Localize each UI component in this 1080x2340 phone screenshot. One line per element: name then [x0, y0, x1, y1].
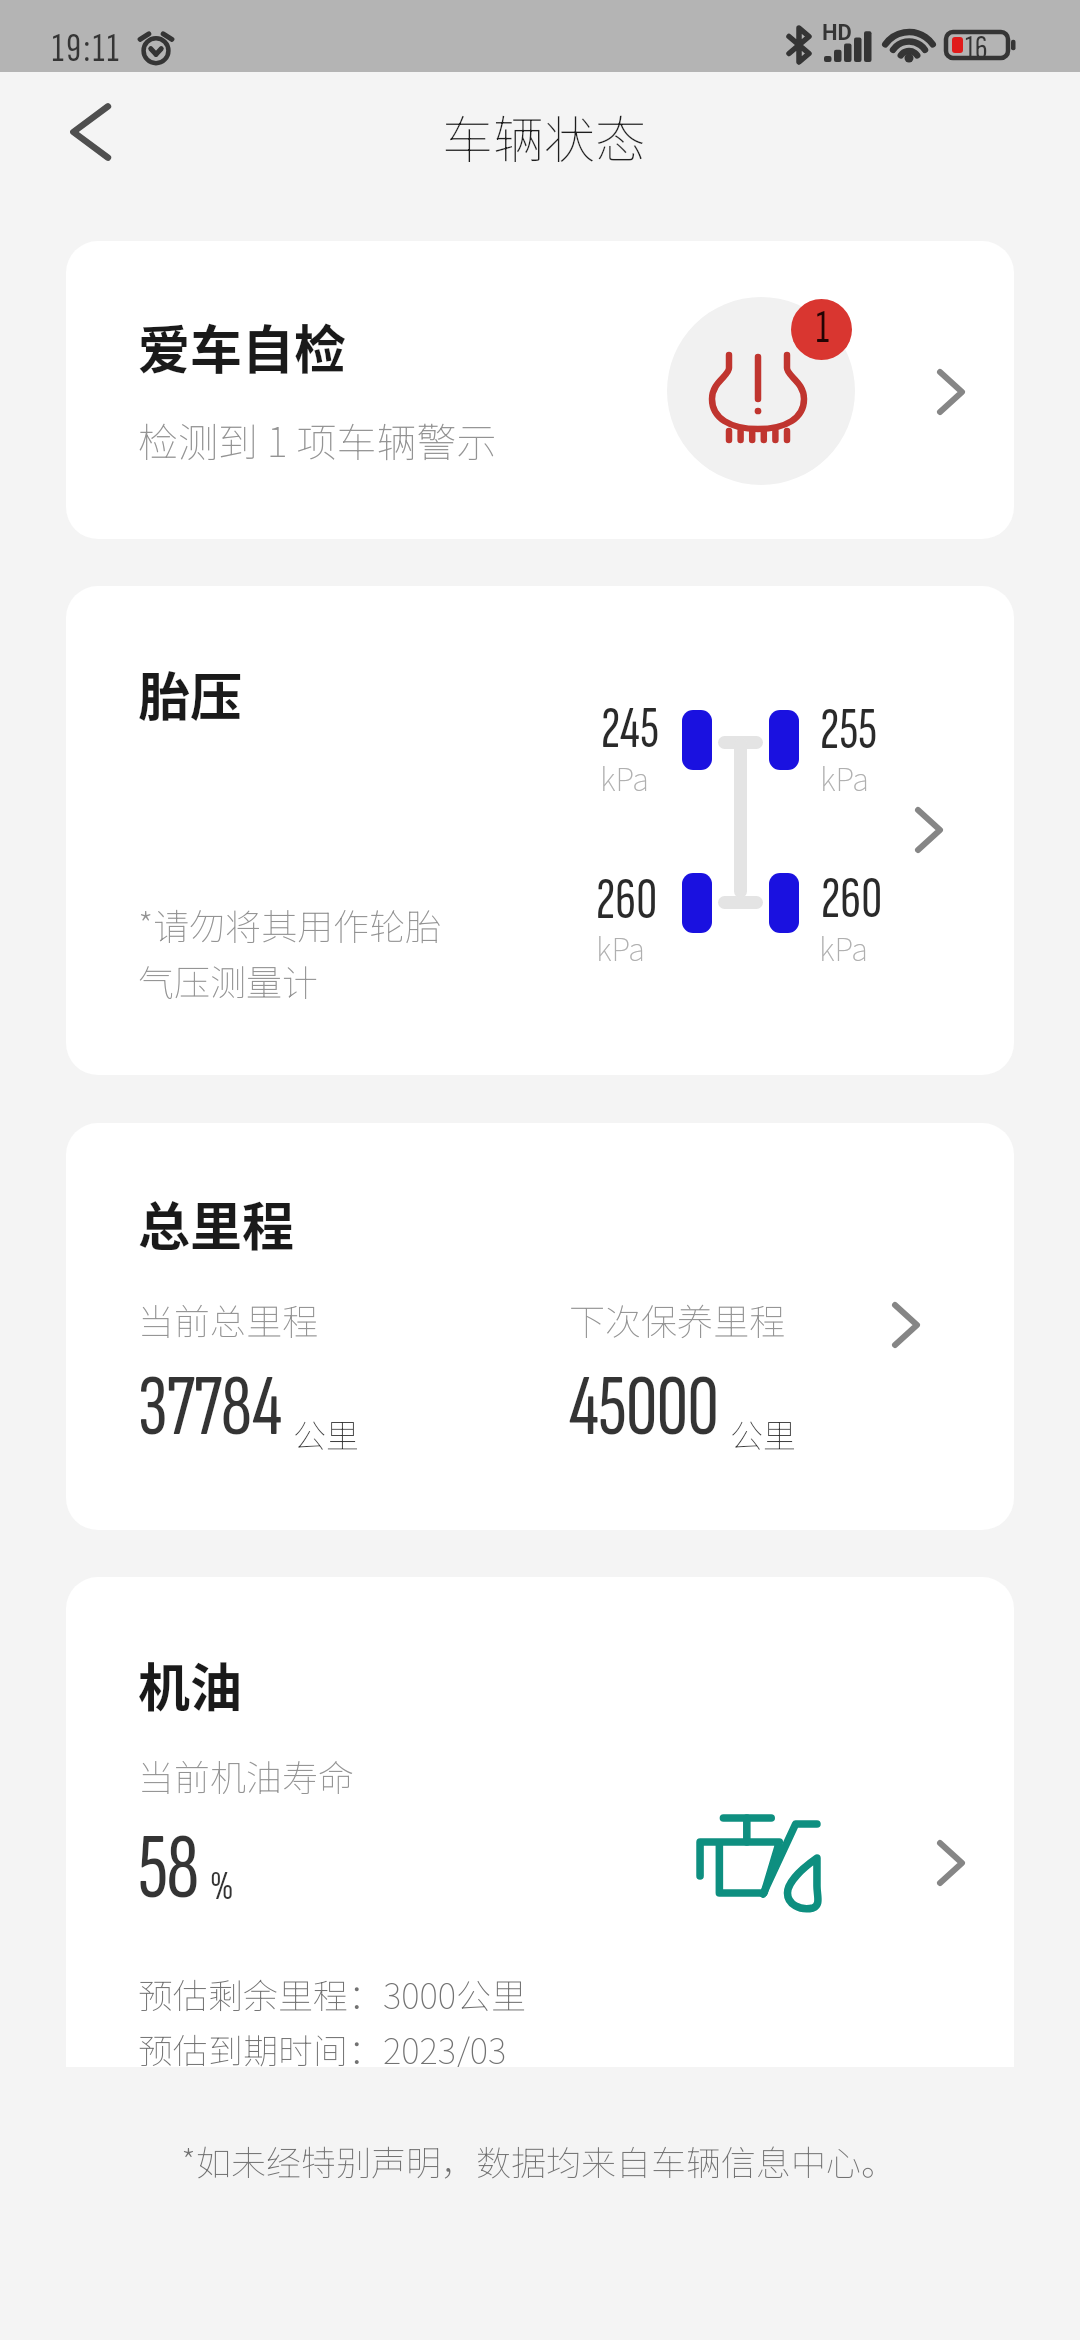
staticText: 公里: [293, 1410, 359, 1458]
staticText: %: [210, 1863, 234, 1911]
staticText: 1: [816, 301, 830, 356]
staticText: 245: [601, 695, 660, 765]
staticText: 当前机油寿命: [138, 1749, 355, 1801]
staticText: 19:11: [52, 24, 122, 73]
button[interactable]: 总里程: [66, 1123, 1014, 1530]
staticText: kPa: [819, 925, 868, 970]
staticText: 45000: [569, 1355, 719, 1461]
staticText: kPa: [596, 925, 645, 970]
staticText: 爱车自检: [138, 309, 347, 384]
staticText: 公里: [730, 1410, 796, 1458]
button[interactable]: 爱车自检: [66, 241, 1014, 539]
button[interactable]: 胎压: [66, 586, 1014, 1075]
staticText: *如未经特别声明，数据均来自车辆信息中心。: [181, 2135, 896, 2186]
button[interactable]: Back: [58, 100, 122, 164]
staticText: 预估剩余里程：3000公里: [138, 1968, 526, 2019]
staticText: kPa: [820, 755, 869, 800]
staticText: 当前总里程: [138, 1293, 319, 1345]
staticText: 气压测量计: [138, 954, 319, 1006]
staticText: kPa: [600, 755, 649, 800]
staticText: 总里程: [138, 1186, 295, 1261]
staticText: 37784: [138, 1355, 282, 1461]
staticText: 255: [820, 696, 878, 766]
staticText: 检测到 1 项车辆警示: [138, 411, 497, 469]
staticText: *请勿将其用作轮胎: [138, 898, 442, 950]
staticText: 58: [138, 1813, 198, 1925]
staticText: 260: [596, 866, 658, 936]
staticText: 胎压: [138, 656, 243, 731]
staticText: 260: [821, 865, 883, 935]
staticText: 车辆状态: [442, 99, 647, 173]
staticText: 机油: [138, 1647, 243, 1722]
staticText: 下次保养里程: [569, 1293, 786, 1345]
button[interactable]: 机油: [66, 1577, 1014, 2067]
staticText: 16: [965, 27, 988, 69]
staticText: HD: [822, 20, 852, 46]
staticText: 预估到期时间：2023/03: [138, 2023, 507, 2067]
